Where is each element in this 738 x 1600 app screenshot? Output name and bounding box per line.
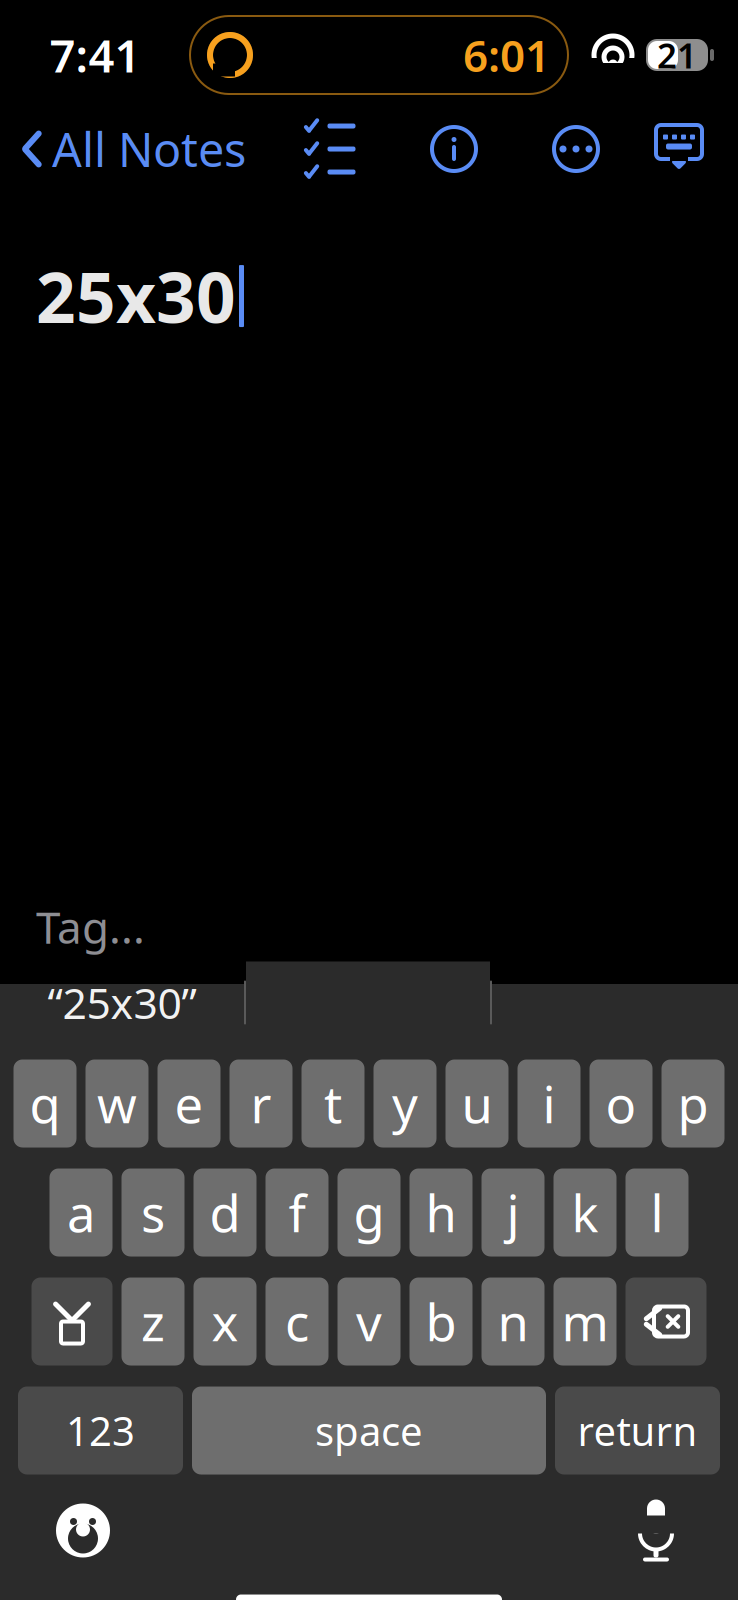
staticText: 21 — [657, 32, 697, 78]
staticText: e — [174, 1070, 203, 1137]
staticText: f — [288, 1179, 305, 1246]
staticText: 6:01 — [463, 26, 550, 84]
staticText: v — [356, 1288, 382, 1355]
button[interactable]: d — [193, 1168, 256, 1256]
button[interactable]: i — [517, 1059, 580, 1147]
button[interactable]: m — [553, 1277, 616, 1365]
staticText: a — [67, 1179, 95, 1246]
button[interactable]: Emoji — [38, 1485, 128, 1575]
staticText: w — [97, 1070, 137, 1137]
staticText: space — [315, 1404, 423, 1457]
button[interactable]: g — [337, 1168, 400, 1256]
staticText: 123 — [66, 1404, 135, 1457]
staticText: y — [392, 1070, 418, 1137]
button[interactable]: u — [445, 1059, 508, 1147]
staticText: k — [571, 1179, 598, 1246]
staticText: g — [353, 1179, 384, 1246]
button[interactable]: More — [540, 113, 612, 185]
staticText: c — [285, 1288, 309, 1355]
button[interactable]: s — [121, 1168, 184, 1256]
button[interactable]: a — [49, 1168, 112, 1256]
button[interactable]: Checklist — [292, 114, 368, 184]
staticText: l — [650, 1179, 663, 1246]
staticText: r — [250, 1070, 271, 1137]
button[interactable]: “25x30” — [0, 961, 244, 1043]
button[interactable]: 123 — [18, 1386, 183, 1474]
button[interactable]: n — [481, 1277, 544, 1365]
button[interactable]: space — [192, 1386, 546, 1474]
button[interactable]: f — [265, 1168, 328, 1256]
button[interactable]: z — [121, 1277, 184, 1365]
button[interactable]: Hide Keyboard — [656, 125, 708, 173]
button[interactable]: v — [337, 1277, 400, 1365]
button[interactable]: Info — [418, 113, 490, 185]
staticText: 7:41 — [49, 25, 140, 85]
button[interactable]: y — [373, 1059, 436, 1147]
staticText: j — [506, 1179, 519, 1246]
staticText: “25x30” — [47, 974, 196, 1031]
staticText: z — [141, 1288, 165, 1355]
button[interactable]: k — [553, 1168, 616, 1256]
staticText: b — [425, 1288, 456, 1355]
button[interactable]: r — [229, 1059, 292, 1147]
button[interactable]: All Notes — [0, 108, 246, 190]
staticText: return — [577, 1404, 697, 1457]
staticText: h — [425, 1179, 456, 1246]
button[interactable]: q — [13, 1059, 76, 1147]
button[interactable]: h — [409, 1168, 472, 1256]
staticText: All Notes — [52, 118, 246, 180]
button[interactable]: w — [85, 1059, 148, 1147]
staticText: s — [141, 1179, 165, 1246]
button[interactable]: l — [625, 1168, 688, 1256]
button[interactable]: o — [589, 1059, 652, 1147]
button[interactable]: t — [301, 1059, 364, 1147]
staticText: Tag... — [36, 898, 145, 956]
staticText: d — [209, 1179, 240, 1246]
button[interactable]: return — [555, 1386, 720, 1474]
button[interactable]: c — [265, 1277, 328, 1365]
staticText: u — [461, 1070, 492, 1137]
staticText: n — [497, 1288, 528, 1355]
button[interactable]: Shift — [31, 1277, 112, 1365]
staticText: o — [605, 1070, 636, 1137]
button[interactable]: b — [409, 1277, 472, 1365]
button[interactable]: x — [193, 1277, 256, 1365]
staticText: i — [542, 1070, 555, 1137]
button[interactable]: e — [157, 1059, 220, 1147]
staticText: x — [211, 1288, 238, 1355]
staticText: t — [324, 1070, 342, 1137]
staticText: m — [561, 1288, 608, 1355]
staticText: 25x30 — [36, 250, 236, 342]
button[interactable]: Delete — [625, 1277, 706, 1365]
button[interactable]: j — [481, 1168, 544, 1256]
button[interactable]: Dictate — [618, 1481, 694, 1579]
button[interactable]: p — [661, 1059, 724, 1147]
staticText: p — [677, 1070, 708, 1137]
staticText: q — [29, 1070, 60, 1137]
